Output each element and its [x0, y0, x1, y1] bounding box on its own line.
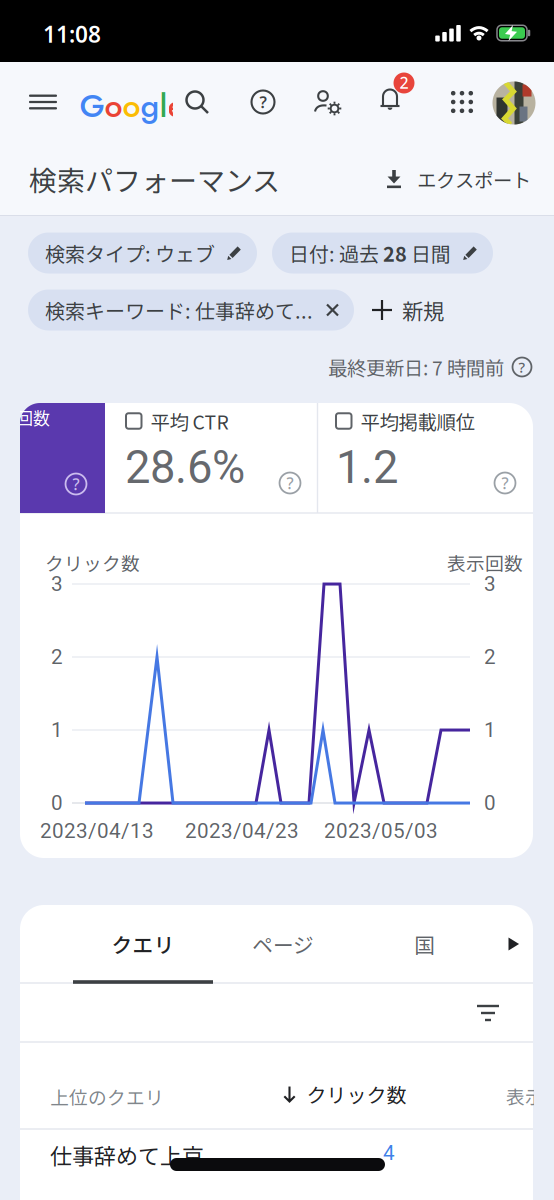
- button[interactable]: Account settings: [307, 83, 347, 123]
- staticText: 検索キーワード: 仕事辞めて...: [45, 295, 313, 324]
- staticText: 日間: [407, 238, 451, 267]
- button[interactable]: Notifications: [370, 78, 414, 126]
- button[interactable]: クエリ: [73, 905, 213, 982]
- staticText: 1.2: [336, 441, 398, 494]
- staticText: 最終更新日: 7 時間前: [328, 353, 504, 381]
- staticText: 28.6%: [125, 441, 245, 494]
- staticText: クエリ: [111, 929, 174, 959]
- staticText: ?: [518, 357, 525, 377]
- button[interactable]: Help: [243, 82, 283, 122]
- staticText: ?: [72, 473, 79, 495]
- staticText: 0: [484, 791, 496, 815]
- button[interactable]: Google: [79, 84, 172, 128]
- staticText: G: [79, 83, 104, 129]
- staticText: l: [159, 83, 167, 129]
- staticText: 上位のクエリ: [50, 1083, 164, 1110]
- staticText: o: [104, 83, 122, 129]
- staticText: クリック数: [45, 549, 140, 576]
- button[interactable]: Sort by clicks: [281, 1079, 406, 1108]
- staticText: 国: [414, 929, 435, 959]
- staticText: 検索パフォーマンス: [29, 159, 280, 199]
- button[interactable]: 検索キーワード: 仕事辞めて...: [28, 289, 354, 330]
- staticText: 1: [484, 718, 496, 742]
- button[interactable]: Google apps: [442, 82, 482, 122]
- staticText: 11:08: [43, 19, 101, 49]
- staticText: 表示回数: [447, 549, 523, 576]
- button[interactable]: 国: [375, 905, 475, 982]
- staticText: 4: [383, 1141, 395, 1165]
- button[interactable]: Search: [179, 84, 215, 120]
- button[interactable]: Export: [383, 165, 531, 193]
- staticText: 3: [484, 572, 496, 596]
- button[interactable]: 平均掲載順位: [336, 407, 474, 435]
- button[interactable]: New filter: [372, 295, 444, 325]
- staticText: e: [167, 83, 184, 129]
- button[interactable]: ページ: [223, 905, 343, 982]
- staticText: 2: [484, 645, 496, 669]
- staticText: o: [122, 83, 140, 129]
- button[interactable]: More tabs: [505, 935, 522, 952]
- staticText: 平均掲載順位: [360, 407, 474, 435]
- staticText: 回数: [16, 405, 50, 430]
- button[interactable]: About CTR: [278, 471, 302, 495]
- button[interactable]: Account: [492, 81, 535, 124]
- staticText: 日付: 過去: [289, 238, 383, 267]
- staticText: クリック数: [306, 1079, 406, 1108]
- staticText: 検索タイプ: ウェブ: [45, 238, 215, 267]
- staticText: 仕事辞めて上京: [50, 1139, 204, 1171]
- staticText: ?: [259, 91, 266, 113]
- staticText: 2: [399, 72, 408, 93]
- staticText: 1: [51, 718, 63, 742]
- button[interactable]: Menu: [23, 82, 63, 122]
- button[interactable]: 仕事辞めて上京: [20, 1130, 533, 1182]
- button[interactable]: 日付: 過去: [272, 232, 493, 273]
- staticText: g: [140, 83, 159, 129]
- staticText: エクスポート: [417, 165, 531, 193]
- button[interactable]: About position: [493, 471, 517, 495]
- staticText: 平均 CTR: [150, 407, 228, 435]
- staticText: 2: [51, 645, 63, 669]
- button[interactable]: 検索タイプ: ウェブ: [28, 232, 257, 273]
- button[interactable]: 平均 CTR: [126, 407, 228, 435]
- staticText: 0: [51, 791, 63, 815]
- staticText: 2023/04/13: [40, 819, 154, 843]
- staticText: ページ: [252, 929, 314, 959]
- staticText: 新規: [402, 295, 444, 325]
- staticText: 2023/04/23: [185, 819, 299, 843]
- staticText: ?: [501, 472, 508, 494]
- staticText: 表示回数: [506, 1082, 554, 1109]
- staticText: 2023/05/03: [324, 819, 438, 843]
- staticText: ?: [286, 472, 293, 494]
- button[interactable]: Filter: [473, 1001, 503, 1025]
- staticText: 3: [51, 572, 63, 596]
- staticText: 28: [383, 238, 407, 267]
